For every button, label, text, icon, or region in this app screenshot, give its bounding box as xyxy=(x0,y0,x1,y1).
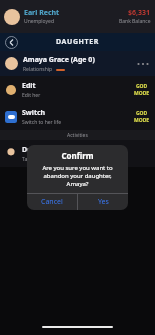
staticText: Confirm xyxy=(27,150,128,161)
button[interactable]: Back xyxy=(5,36,18,49)
staticText: Bank Balance xyxy=(119,18,151,25)
staticText: Take her to the doctor xyxy=(22,156,74,163)
staticText: Switch to her life xyxy=(22,119,62,126)
button[interactable]: More options xyxy=(136,57,150,71)
staticText: Are you sure you want to abandon your da… xyxy=(32,164,123,188)
staticText: Cancel xyxy=(41,197,63,207)
staticText: Edit xyxy=(22,81,36,91)
staticText: Edit her xyxy=(22,92,41,99)
button[interactable]: Yes xyxy=(78,194,128,210)
button[interactable]: Switch xyxy=(0,103,155,130)
staticText: Unemployed xyxy=(24,18,54,25)
staticText: Relationship xyxy=(23,66,53,73)
staticText: Switch xyxy=(22,108,46,118)
staticText: $6,331 xyxy=(128,8,151,18)
staticText: Earl Recht xyxy=(24,8,60,18)
button[interactable]: Cancel xyxy=(27,194,77,210)
staticText: Activities xyxy=(67,132,88,139)
staticText: MODE xyxy=(134,117,150,124)
staticText: Amaya Grace (Age 0) xyxy=(23,55,95,65)
staticText: Yes xyxy=(98,197,109,207)
staticText: MODE xyxy=(134,90,150,97)
button[interactable]: Doctor xyxy=(0,140,155,167)
button[interactable]: Edit xyxy=(0,76,155,103)
staticText: GOD xyxy=(136,110,148,117)
staticText: GOD xyxy=(136,83,148,90)
staticText: DAUGHTER xyxy=(56,37,99,47)
staticText: Doctor xyxy=(22,145,46,155)
